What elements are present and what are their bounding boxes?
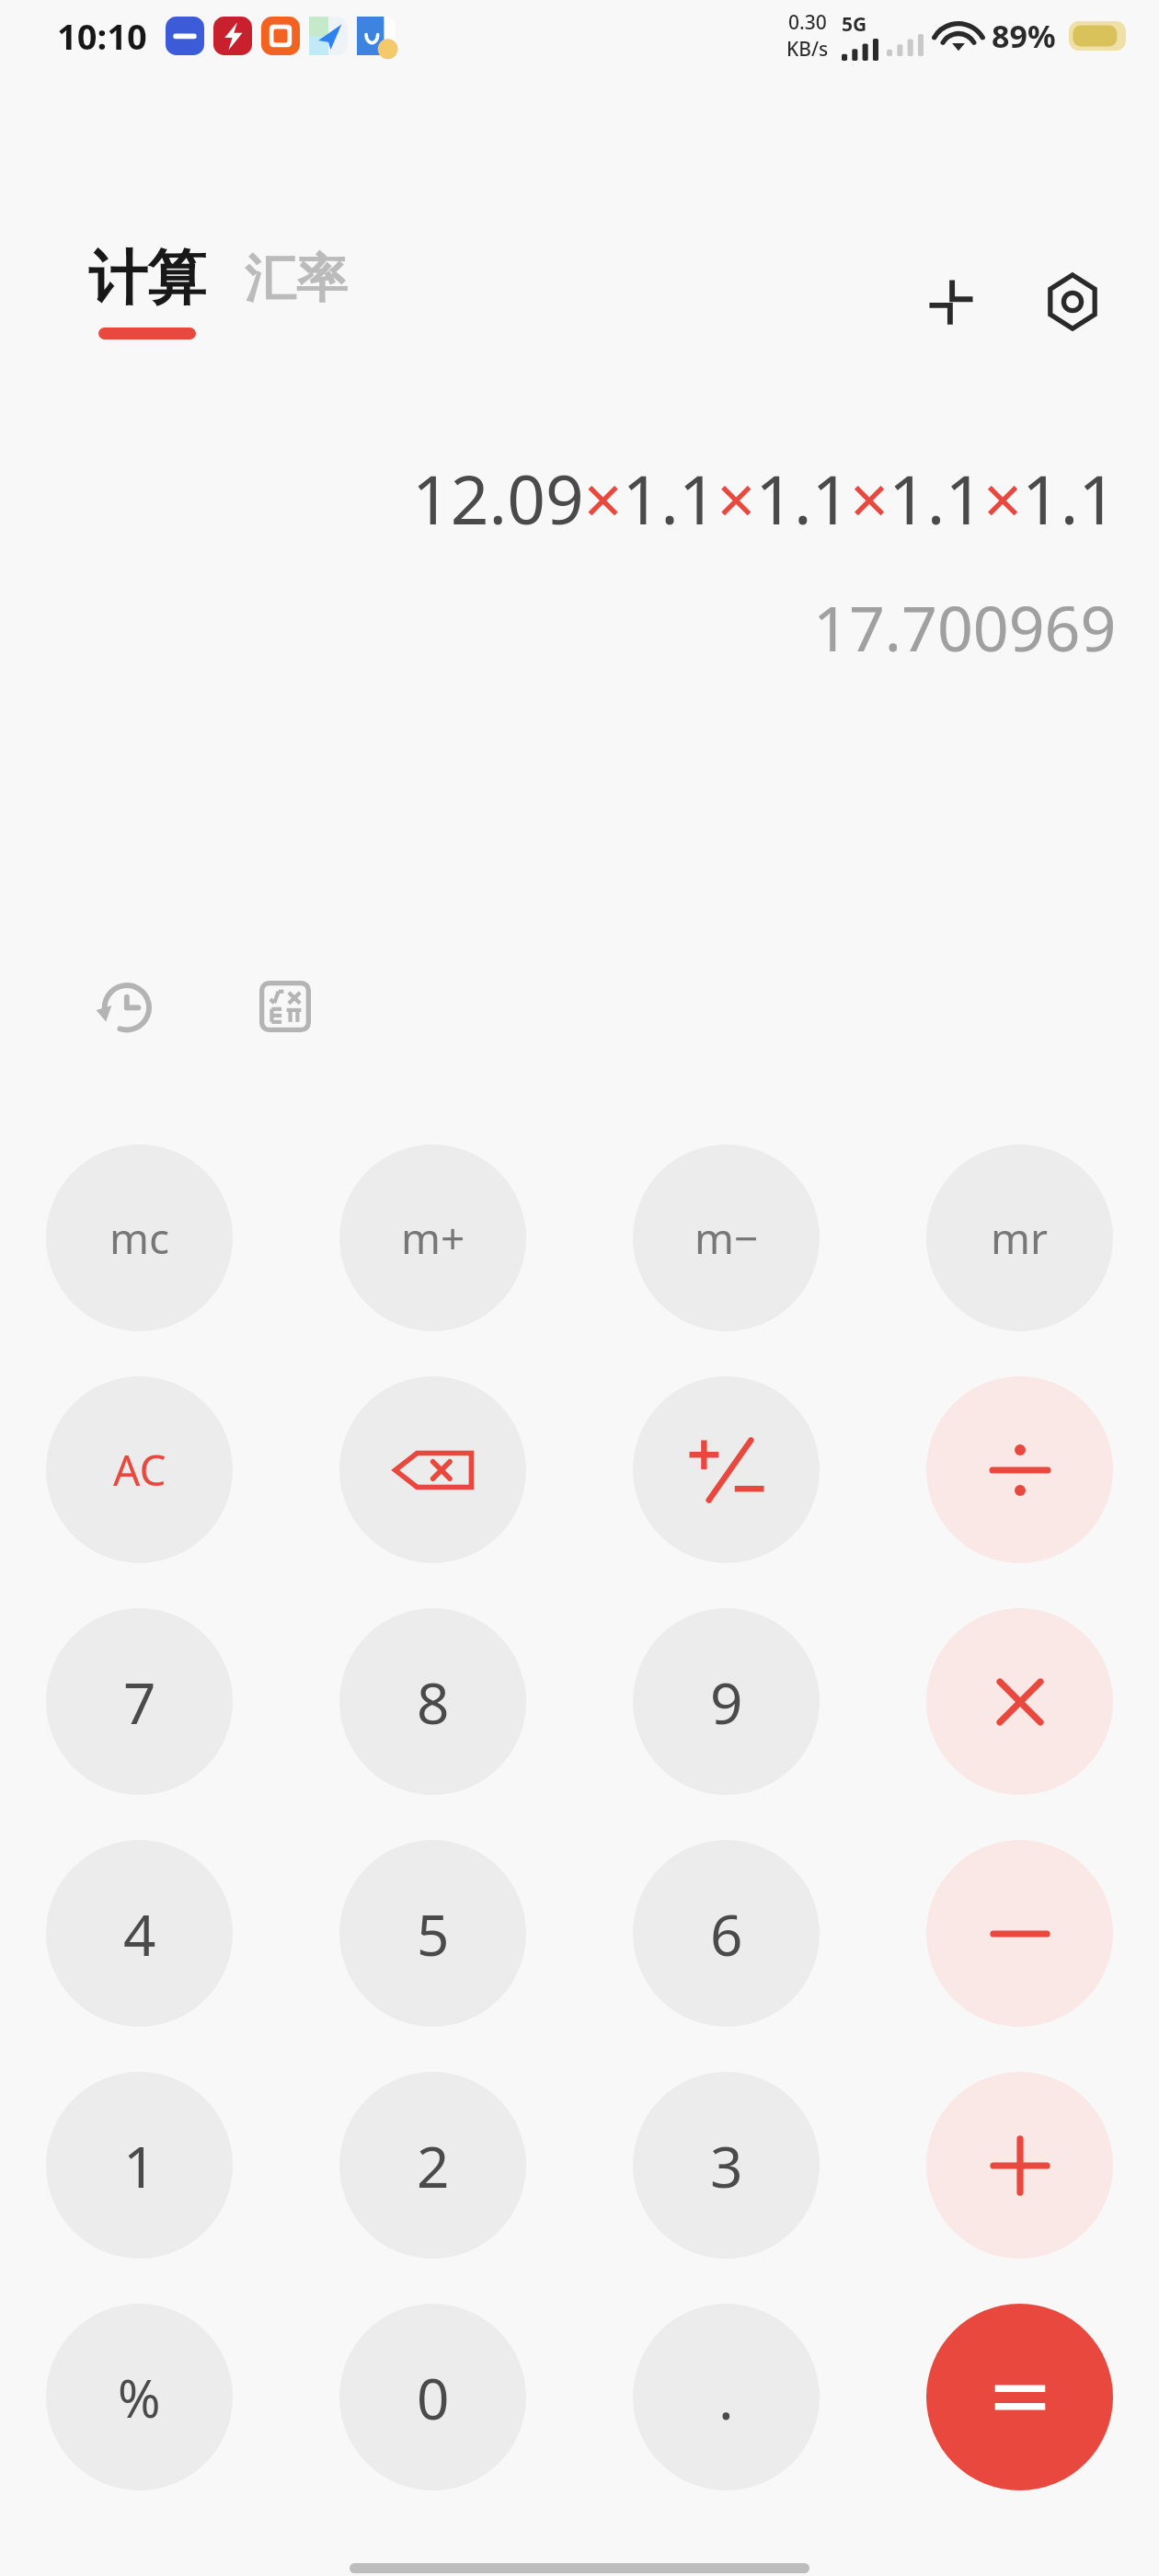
button[interactable]: 0: [339, 2304, 526, 2490]
button[interactable]: 汇率: [245, 241, 348, 306]
button[interactable]: 2: [339, 2072, 526, 2259]
button[interactable]: .: [633, 2304, 820, 2490]
staticText: 9: [710, 1663, 743, 1741]
staticText: 5G: [842, 11, 867, 38]
staticText: 汇率: [245, 247, 348, 312]
button[interactable]: 8: [339, 1608, 526, 1795]
button[interactable]: Plus: [926, 2072, 1113, 2259]
staticText: 2: [417, 2127, 450, 2204]
button[interactable]: mr: [926, 1144, 1113, 1331]
staticText: 17.700969: [813, 584, 1117, 670]
staticText: 6: [710, 1895, 743, 1972]
button[interactable]: 6: [633, 1840, 820, 2027]
staticText: 3: [710, 2127, 743, 2204]
staticText: 10:10: [57, 12, 147, 60]
staticText: AC: [113, 1441, 166, 1499]
staticText: 计算: [88, 241, 206, 316]
staticText: 7: [123, 1663, 156, 1741]
staticText: mr: [991, 1209, 1049, 1267]
button[interactable]: 9: [633, 1608, 820, 1795]
button[interactable]: Scientific calculator: [241, 962, 329, 1051]
staticText: 0.30: [788, 9, 827, 36]
button[interactable]: 7: [46, 1608, 233, 1795]
button[interactable]: 3: [633, 2072, 820, 2259]
staticText: 8: [417, 1663, 450, 1741]
button[interactable]: Settings: [1027, 256, 1119, 348]
staticText: 5: [417, 1895, 450, 1972]
staticText: mc: [109, 1209, 170, 1267]
staticText: 0: [417, 2359, 450, 2436]
staticText: 89%: [992, 15, 1056, 57]
staticText: KB/s: [786, 36, 829, 63]
button[interactable]: AC: [46, 1376, 233, 1563]
button[interactable]: Divide: [926, 1376, 1113, 1563]
button[interactable]: Backspace: [339, 1376, 526, 1563]
button[interactable]: Collapse: [905, 256, 997, 348]
staticText: .: [718, 2359, 734, 2436]
button[interactable]: m−: [633, 1144, 820, 1331]
button[interactable]: Equals: [926, 2304, 1113, 2490]
button[interactable]: Plus minus: [633, 1376, 820, 1563]
button[interactable]: Minus: [926, 1840, 1113, 2027]
button[interactable]: m+: [339, 1144, 526, 1331]
button[interactable]: Multiply: [926, 1608, 1113, 1795]
staticText: 1: [123, 2127, 156, 2204]
button[interactable]: History: [81, 962, 169, 1051]
staticText: 12.09×1.1×1.1×1.1×1.1: [412, 453, 1117, 544]
button[interactable]: 计算: [88, 241, 206, 339]
button[interactable]: %: [46, 2304, 233, 2490]
staticText: %: [118, 2363, 161, 2432]
button[interactable]: mc: [46, 1144, 233, 1331]
staticText: m+: [401, 1209, 465, 1267]
button[interactable]: 4: [46, 1840, 233, 2027]
button[interactable]: 5: [339, 1840, 526, 2027]
button[interactable]: 1: [46, 2072, 233, 2259]
staticText: 4: [123, 1895, 156, 1972]
staticText: m−: [694, 1209, 759, 1267]
